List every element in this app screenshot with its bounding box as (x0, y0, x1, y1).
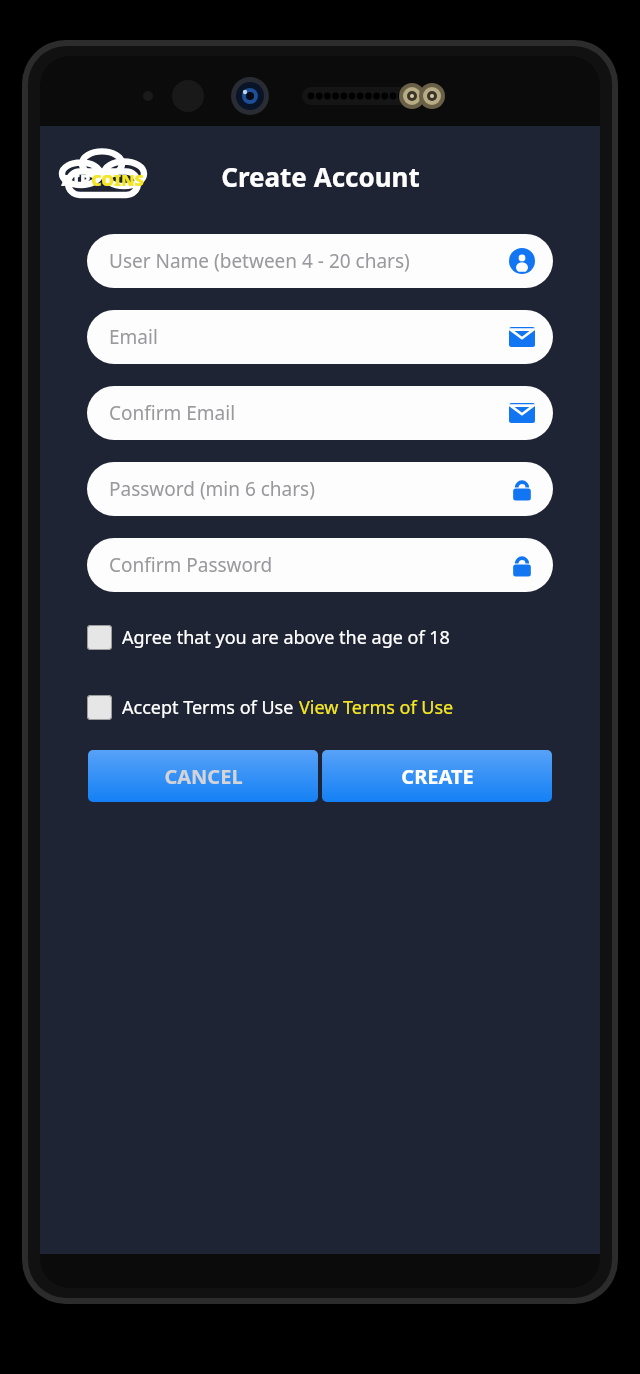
button[interactable]: Agree that you are above the age of 18 (87, 622, 553, 652)
staticText: Confirm Email (109, 400, 236, 426)
staticText: User Name (between 4 - 20 chars) (109, 248, 410, 274)
button[interactable]: Confirm Email (87, 386, 553, 440)
staticText: COINS (91, 169, 144, 191)
button[interactable]: CREATE (322, 750, 552, 802)
staticText: CANCEL (164, 763, 243, 790)
staticText: Password (min 6 chars) (109, 476, 315, 502)
staticText: AIR (61, 169, 91, 191)
other: Password (509, 552, 535, 578)
staticText: Confirm Password (109, 552, 273, 578)
staticText: Agree that you are above the age of 18 (122, 625, 450, 650)
staticText: Create Account (221, 159, 420, 194)
button[interactable]: Email (87, 310, 553, 364)
button[interactable]: View Terms of Use (299, 695, 454, 720)
button[interactable]: CANCEL (88, 750, 318, 802)
button[interactable]: Confirm Password (87, 538, 553, 592)
button[interactable]: User Name (between 4 - 20 chars) (87, 234, 553, 288)
other: User name (509, 248, 535, 274)
staticText: CREATE (401, 763, 474, 790)
button[interactable]: Accept Terms of Use (87, 692, 553, 722)
other: Password (509, 476, 535, 502)
other: Email (509, 324, 535, 350)
button[interactable]: Password (min 6 chars) (87, 462, 553, 516)
staticText: Email (109, 324, 158, 350)
other: Email (509, 400, 535, 426)
staticText: View Terms of Use (299, 695, 454, 720)
staticText: Accept Terms of Use (122, 695, 299, 720)
